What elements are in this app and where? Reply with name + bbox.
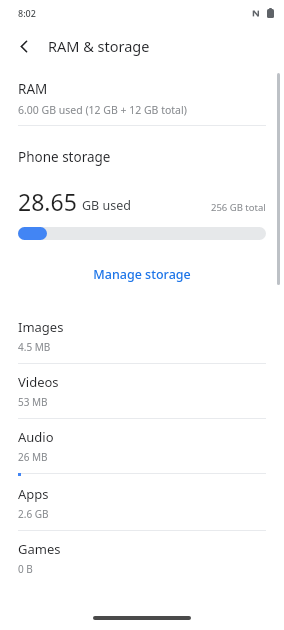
staticText: Videos [18,373,59,391]
button[interactable]: Images [0,309,284,363]
staticText: 6.00 GB used (12 GB + 12 GB total) [18,103,187,117]
staticText: 26 MB [18,450,48,464]
button[interactable]: Audio [0,419,284,473]
staticText: RAM & storage [48,36,150,56]
button[interactable]: Games [0,531,284,585]
staticText: Apps [18,485,49,503]
staticText: 0 B [18,562,33,576]
staticText: Audio [18,428,54,446]
button[interactable]: Back [8,30,40,62]
staticText: 28.65 [18,186,77,217]
staticText: RAM [18,80,48,98]
staticText: 2.6 GB [18,507,49,521]
staticText: Phone storage [18,148,111,166]
staticText: GB used [82,197,131,214]
staticText: Images [18,318,64,336]
staticText: 53 MB [18,395,48,409]
button[interactable]: Videos [0,364,284,418]
staticText: 4.5 MB [18,340,51,354]
staticText: Games [18,540,61,558]
button[interactable]: Apps [0,476,284,530]
button[interactable]: RAM [0,80,284,117]
staticText: Manage storage [93,266,191,283]
staticText: 8:02 [18,7,36,19]
staticText: 256 GB total [211,201,266,214]
button[interactable]: Manage storage [0,262,284,287]
